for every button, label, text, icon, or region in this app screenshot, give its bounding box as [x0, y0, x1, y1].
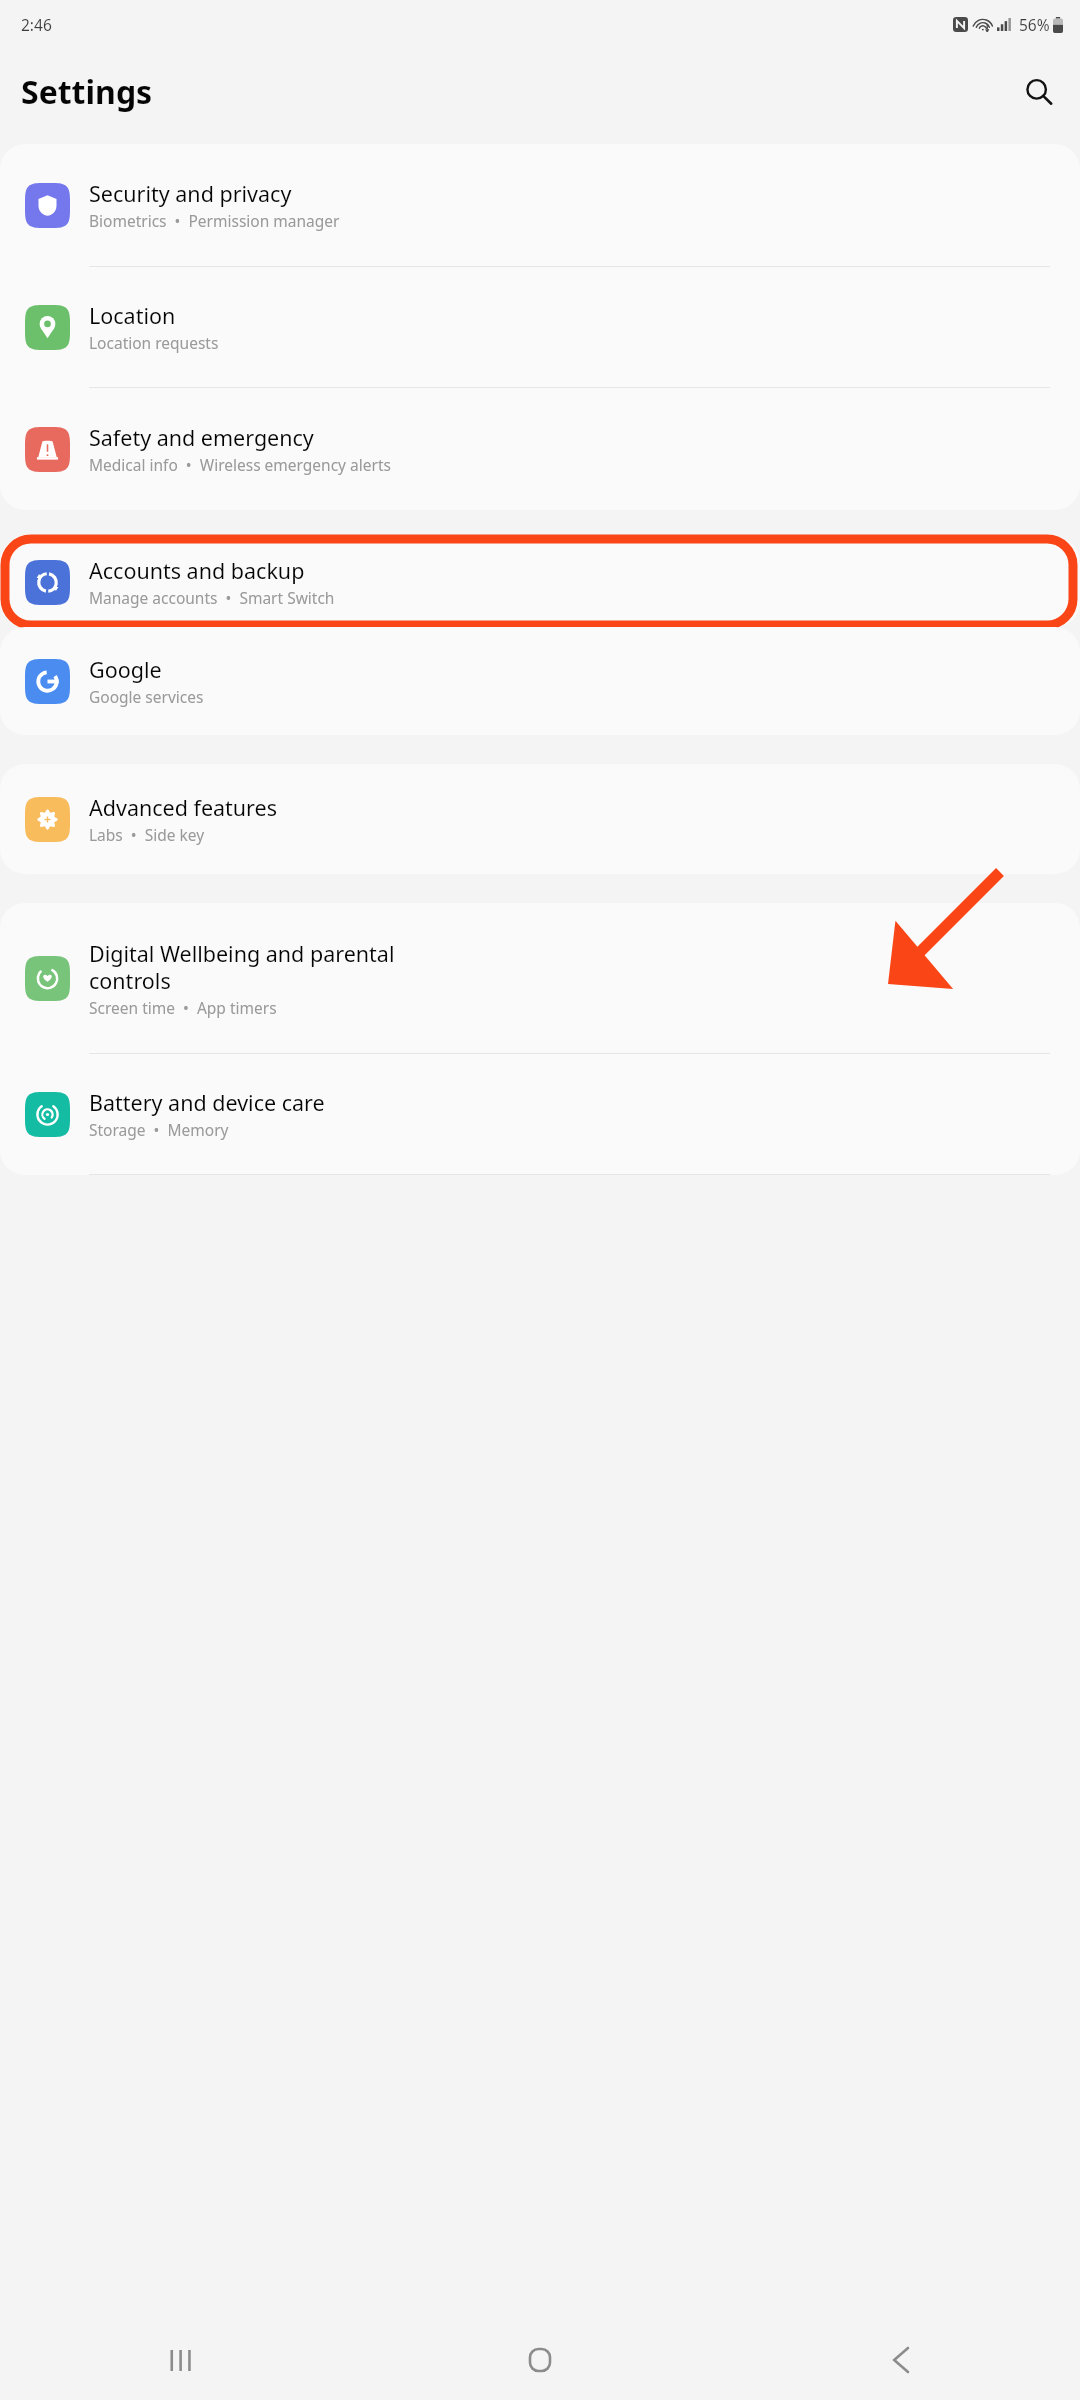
staticText: Location requests — [89, 332, 219, 353]
staticText: 2:46 — [21, 14, 52, 35]
button[interactable]: Security and privacy — [0, 144, 1080, 267]
button[interactable]: Advanced features — [0, 764, 1080, 874]
staticText: Accounts and backup — [89, 556, 305, 585]
staticText: Settings — [21, 70, 153, 114]
staticText: Safety and emergency — [89, 423, 314, 452]
staticText: Storage • Memory — [89, 1119, 229, 1140]
staticText: Google services — [89, 686, 204, 707]
button[interactable]: Safety and emergency — [0, 388, 1080, 510]
staticText: Medical info • Wireless emergency alerts — [89, 454, 391, 475]
staticText: Battery and device care — [89, 1088, 325, 1117]
staticText: Google — [89, 655, 162, 684]
button[interactable]: Accounts and backup — [0, 537, 1080, 627]
staticText: Security and privacy — [89, 179, 292, 208]
button[interactable]: Recent apps — [0, 2320, 360, 2400]
button[interactable]: Location — [0, 267, 1080, 388]
staticText: Advanced features — [89, 793, 277, 822]
button[interactable]: Digital Wellbeing and parental controls — [0, 903, 1080, 1054]
staticText: Biometrics • Permission manager — [89, 210, 340, 231]
staticText: Digital Wellbeing and parental controls — [89, 939, 395, 995]
button[interactable]: Search — [1016, 69, 1062, 115]
staticText: Manage accounts • Smart Switch — [89, 587, 335, 608]
button[interactable]: Back — [720, 2320, 1080, 2400]
staticText: Screen time • App timers — [89, 997, 277, 1018]
staticText: Labs • Side key — [89, 824, 205, 845]
button[interactable]: Google — [0, 627, 1080, 735]
staticText: Location — [89, 301, 176, 330]
button[interactable]: Home — [360, 2320, 720, 2400]
button[interactable]: Battery and device care — [0, 1054, 1080, 1175]
staticText: 56% — [1019, 14, 1050, 35]
